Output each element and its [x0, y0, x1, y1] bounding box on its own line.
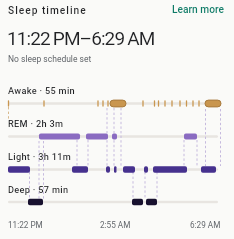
staticText: Deep · 57 min: [8, 184, 69, 195]
button[interactable]: Sleep timeline: [8, 5, 87, 17]
staticText: 11:22 PM: [8, 220, 43, 230]
staticText: 6:29 AM: [190, 220, 221, 230]
staticText: REM · 2h 3m: [8, 118, 64, 129]
staticText: Awake · 55 min: [8, 85, 75, 96]
staticText: Light · 3h 11m: [8, 151, 72, 162]
staticText: No sleep schedule set: [8, 54, 92, 64]
button[interactable]: Learn more: [172, 4, 224, 16]
staticText: 11:22 PM–6:29 AM: [7, 27, 155, 49]
staticText: 2:55 AM: [100, 220, 131, 230]
